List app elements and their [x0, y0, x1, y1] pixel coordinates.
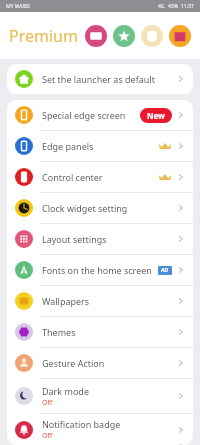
- staticText: Off: [42, 431, 53, 441]
- button[interactable]: Layout settings: [7, 224, 193, 254]
- staticText: Off: [42, 398, 53, 408]
- button[interactable]: Control center: [7, 162, 193, 192]
- staticText: AD: [161, 267, 169, 274]
- button[interactable]: Info: [141, 25, 163, 47]
- staticText: Gesture Action: [42, 357, 105, 369]
- staticText: Clock widget setting: [42, 202, 128, 214]
- staticText: Themes: [42, 326, 76, 338]
- staticText: Special edge screen: [42, 109, 126, 121]
- staticText: Wallpapers: [42, 295, 90, 307]
- staticText: 43%: [168, 3, 178, 10]
- button[interactable]: Notification badge: [7, 414, 193, 445]
- staticText: 4G: [158, 3, 165, 10]
- button[interactable]: Gesture Action: [7, 348, 193, 378]
- staticText: Layout settings: [42, 233, 107, 245]
- staticText: 11:37: [181, 3, 194, 10]
- staticText: Premium: [9, 25, 78, 47]
- button[interactable]: Edge panels: [7, 131, 193, 161]
- button[interactable]: Rate us: [113, 25, 135, 47]
- staticText: Notification badge: [42, 418, 121, 430]
- button[interactable]: Clock widget setting: [7, 193, 193, 223]
- button[interactable]: Themes: [7, 317, 193, 347]
- staticText: Edge panels: [42, 140, 94, 152]
- staticText: New: [147, 110, 165, 121]
- staticText: Dark mode: [42, 385, 89, 397]
- button[interactable]: Messages: [85, 25, 107, 47]
- button[interactable]: Dark mode: [7, 379, 193, 413]
- staticText: Set the launcher as default: [42, 73, 155, 85]
- button[interactable]: Set the launcher as default: [7, 64, 193, 94]
- button[interactable]: Wallpapers: [7, 286, 193, 316]
- staticText: Fonts on the home screen: [42, 264, 152, 276]
- button[interactable]: Gift: [169, 25, 191, 47]
- button[interactable]: Special edge screen: [7, 100, 193, 130]
- staticText: MY MAXIS: [6, 3, 30, 10]
- button[interactable]: Fonts on the home screen: [7, 255, 193, 285]
- staticText: Control center: [42, 171, 103, 183]
